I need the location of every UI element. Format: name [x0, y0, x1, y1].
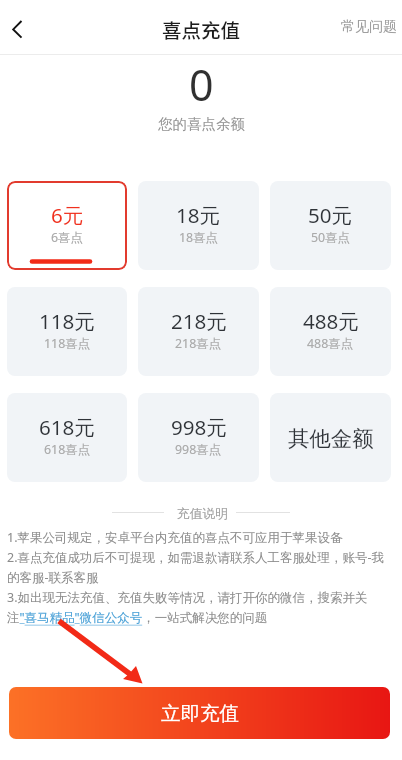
staticText: 您的喜点余额 [158, 115, 245, 133]
staticText: 618元 [39, 413, 95, 441]
button[interactable]: 常见问题 [335, 10, 402, 44]
button[interactable]: 618元 [7, 393, 127, 482]
staticText: 喜点充值 [162, 15, 241, 43]
staticText: 998元 [171, 413, 227, 441]
button[interactable]: 6元 [7, 181, 127, 270]
button[interactable]: 488元 [270, 287, 391, 376]
staticText: 218元 [171, 307, 227, 335]
button[interactable]: 118元 [7, 287, 127, 376]
staticText: 50喜点 [311, 229, 350, 246]
staticText: 118元 [39, 307, 95, 335]
button[interactable]: 218元 [138, 287, 259, 376]
staticText: 118喜点 [44, 335, 91, 352]
staticText: 488元 [303, 307, 359, 335]
button[interactable]: Back [0, 0, 44, 44]
staticText: 488喜点 [307, 335, 354, 352]
staticText: 其他金额 [288, 425, 374, 452]
button[interactable]: 998元 [138, 393, 259, 482]
staticText: 0 [189, 55, 214, 114]
staticText: 6喜点 [51, 229, 83, 246]
staticText: 6元 [51, 201, 84, 229]
staticText: 18喜点 [179, 229, 218, 246]
staticText: 18元 [176, 201, 221, 229]
button[interactable]: 其他金额 [270, 393, 391, 482]
staticText: 618喜点 [44, 441, 91, 458]
button[interactable]: 立即充值 [9, 687, 390, 739]
staticText: 998喜点 [175, 441, 222, 458]
staticText: 立即充值 [161, 701, 239, 726]
staticText: 1.苹果公司规定，安卓平台内充值的喜点不可应用于苹果设备 2.喜点充值成功后不可… [7, 529, 385, 626]
staticText: 50元 [308, 201, 353, 229]
button[interactable]: 50元 [270, 181, 391, 270]
staticText: 充值说明 [177, 506, 228, 522]
button[interactable]: 18元 [138, 181, 259, 270]
staticText: 218喜点 [175, 335, 222, 352]
staticText: 常见问题 [341, 18, 397, 36]
